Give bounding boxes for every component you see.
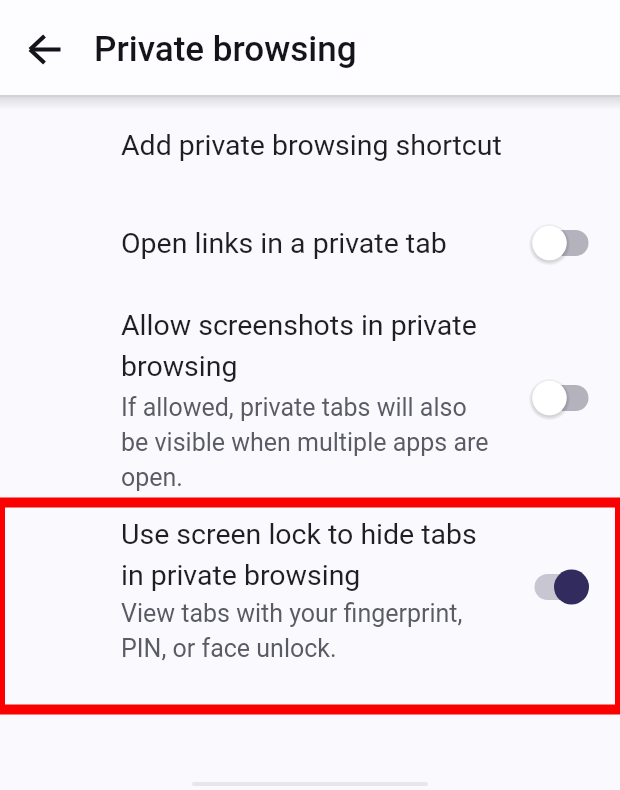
button[interactable]: Use screen lock to hide tabs in private … (0, 518, 620, 663)
staticText: Use screen lock to hide tabs in private … (121, 518, 477, 592)
staticText: Private browsing (94, 29, 357, 70)
staticText: Add private browsing shortcut (121, 129, 502, 162)
staticText: Open links in a private tab (121, 227, 533, 260)
button[interactable]: Add private browsing shortcut (0, 110, 620, 180)
button[interactable] (18, 24, 66, 72)
button[interactable]: Allow screenshots in private browsing (0, 309, 620, 492)
staticText: If allowed, private tabs will also be vi… (121, 393, 489, 492)
staticText: Allow screenshots in private browsing (121, 309, 477, 383)
staticText: View tabs with your fingerprint, PIN, or… (121, 599, 463, 663)
button[interactable]: Open links in a private tab (0, 207, 620, 279)
